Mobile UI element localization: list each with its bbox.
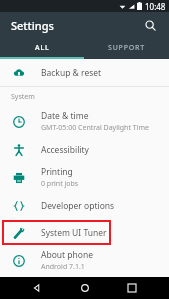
staticText: SUPPORT [108,43,146,53]
staticText: Android 7.1.1 [41,262,85,272]
button[interactable]: Date & time [0,107,169,136]
button[interactable]: Printing [0,163,169,192]
staticText: System UI Tuner [41,227,107,239]
staticText: 0 print jobs [41,179,79,189]
staticText: System [11,92,35,102]
staticText: Settings [11,18,54,33]
button[interactable]: Developer options [0,192,169,219]
staticText: Accessibility [41,144,89,156]
staticText: Printing [41,166,73,178]
button[interactable]: Accessibility [0,136,169,163]
staticText: GMT-05:00 Central Daylight Time [41,123,149,133]
button[interactable]: System UI Tuner [0,219,169,246]
button[interactable]: Backup & reset [0,59,169,86]
staticText: About phone [41,249,94,261]
staticText: Backup & reset [41,67,102,79]
button[interactable]: ALL [0,38,84,57]
button[interactable]: Recent apps [121,277,143,299]
staticText: Date & time [41,110,89,122]
button[interactable]: Search [139,14,161,36]
staticText: Developer options [41,200,115,212]
button[interactable]: SUPPORT [84,38,169,57]
staticText: 10:48 [145,1,166,12]
button[interactable]: Home [74,277,96,299]
button[interactable]: About phone [0,246,169,275]
button[interactable]: Back [26,277,48,299]
staticText: ALL [35,43,50,53]
